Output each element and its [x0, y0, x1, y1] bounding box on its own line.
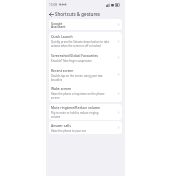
button[interactable]: Google Assistant: [49, 19, 122, 30]
button[interactable]: Screenshot/Global Favourites: [49, 50, 122, 65]
staticText: Quick Launch: [51, 34, 73, 39]
button[interactable]: Mute ringtone/Reduce volume: [49, 104, 122, 120]
staticText: Raise the phone or tap twice on the phon…: [51, 92, 105, 100]
button[interactable]: Quick Launch: [49, 32, 122, 50]
staticText: Flip to mute or hold to reduce ringing v…: [51, 111, 99, 119]
button[interactable]: Back: [47, 10, 55, 18]
staticText: Wake screen: [51, 86, 72, 91]
button[interactable]: Wake screen: [49, 84, 122, 102]
button[interactable]: Answer calls: [49, 121, 122, 134]
staticText: Recent screen: [51, 68, 74, 73]
staticText: Mute ringtone/Reduce volume: [51, 105, 100, 110]
staticText: Quickly press the Volume down button to …: [51, 40, 110, 48]
button[interactable]: Recent screen: [49, 65, 122, 84]
staticText: Google Assistant: [51, 21, 66, 29]
staticText: Knuckle? Take finger suspension: [51, 59, 92, 63]
staticText: Answer calls: [51, 123, 71, 128]
staticText: Double-tap on the screen using your two …: [51, 74, 103, 82]
staticText: Raise the phone to your ear: [51, 129, 86, 133]
staticText: Shortcuts & gestures: [55, 11, 100, 17]
staticText: 10:08: [49, 3, 58, 7]
staticText: Screenshot/Global Favourites: [51, 53, 98, 58]
